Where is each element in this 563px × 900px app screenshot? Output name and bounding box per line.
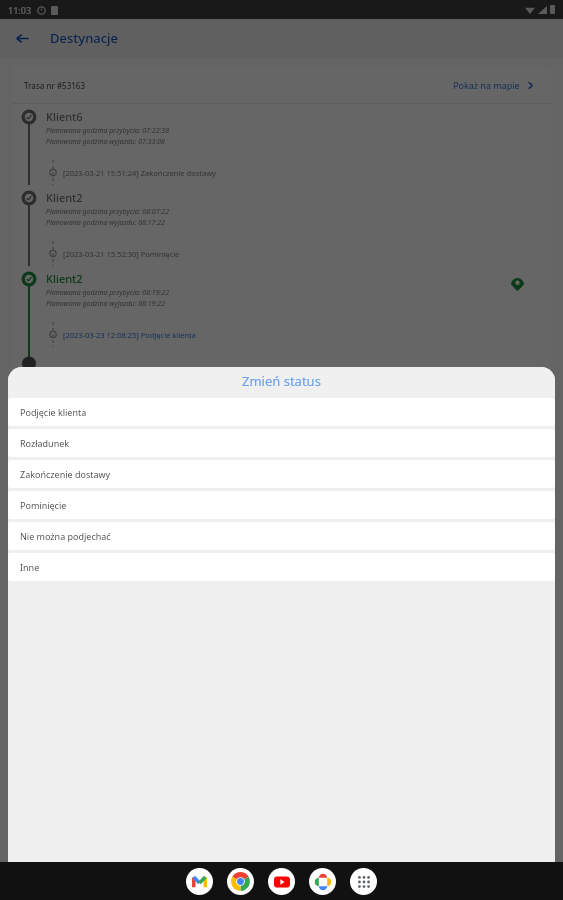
staticText: Planowana godzina przybycia: 08:19:22 [46, 288, 170, 298]
staticText: Planowana godzina wyjazdu: 07:33:08 [46, 137, 165, 147]
staticText: Planowana godzina przybycia: 07:22:38 [46, 126, 170, 136]
button[interactable]: Nie można podjechać [8, 522, 555, 550]
staticText: Destynacje [50, 29, 119, 47]
button[interactable]: Show on map [507, 274, 527, 294]
staticText: Zmień status [242, 372, 321, 390]
staticText: Klient2 [46, 271, 83, 286]
staticText: 11:03 [8, 4, 32, 16]
staticText: Trasa nr #53163 [24, 80, 85, 91]
staticText: [2023-03-21 15:52:30] Pominięcie [63, 249, 180, 259]
staticText: Klient [46, 365, 77, 377]
staticText: [2023-03-21 15:51:24] Zakończenie dostaw… [63, 168, 216, 178]
staticText: Pominięcie [20, 499, 67, 511]
button[interactable]: Podjęcie klienta [8, 398, 555, 426]
staticText: Planowana godzina wyjazdu: 08:19:22 [46, 299, 165, 309]
staticText: Rozładunek [20, 437, 70, 449]
button[interactable]: Gmail [186, 868, 213, 895]
button[interactable]: Pokaż na mapie [449, 75, 539, 95]
staticText: Planowana godzina przybycia: 08:07:22 [46, 207, 170, 217]
button[interactable]: Back [8, 24, 36, 52]
staticText: Nie można podjechać [20, 530, 111, 542]
button[interactable]: Zakończenie dostawy [8, 460, 555, 488]
staticText: Planowana godzina wyjazdu: 08:17:22 [46, 218, 165, 228]
button[interactable]: Pominięcie [8, 491, 555, 519]
button[interactable]: Chrome [227, 868, 254, 895]
button[interactable]: Klient6 [12, 104, 551, 185]
staticText: Pokaż na mapie [453, 79, 520, 91]
button[interactable]: Klient2 [12, 185, 551, 266]
button[interactable]: All apps [350, 868, 377, 895]
button[interactable]: YouTube [268, 868, 295, 895]
staticText: [2023-03-23 12:08:25] Podjęcie klienta [63, 330, 196, 340]
staticText: Klient2 [46, 190, 83, 205]
button[interactable]: Google Photos [309, 868, 336, 895]
staticText: Zakończenie dostawy [20, 468, 111, 480]
staticText: Klient6 [46, 109, 83, 124]
staticText: Inne [20, 561, 40, 573]
staticText: Podjęcie klienta [20, 406, 87, 418]
button[interactable]: Klient2 [12, 266, 551, 347]
button[interactable]: Rozładunek [8, 429, 555, 457]
button[interactable]: Inne [8, 553, 555, 581]
